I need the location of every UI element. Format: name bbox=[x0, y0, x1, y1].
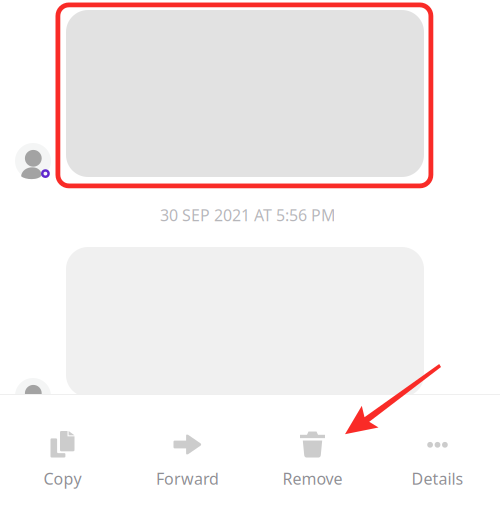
button[interactable]: Details bbox=[375, 394, 500, 510]
button[interactable]: Forward bbox=[125, 394, 250, 510]
staticText: 30 SEP 2021 AT 5:56 PM bbox=[160, 204, 336, 226]
button[interactable]: Remove bbox=[250, 394, 375, 510]
staticText: Copy bbox=[43, 468, 81, 489]
staticText: Forward bbox=[156, 468, 219, 489]
staticText: Details bbox=[411, 468, 463, 489]
staticText: Remove bbox=[282, 468, 342, 489]
button[interactable]: Copy bbox=[0, 394, 125, 510]
